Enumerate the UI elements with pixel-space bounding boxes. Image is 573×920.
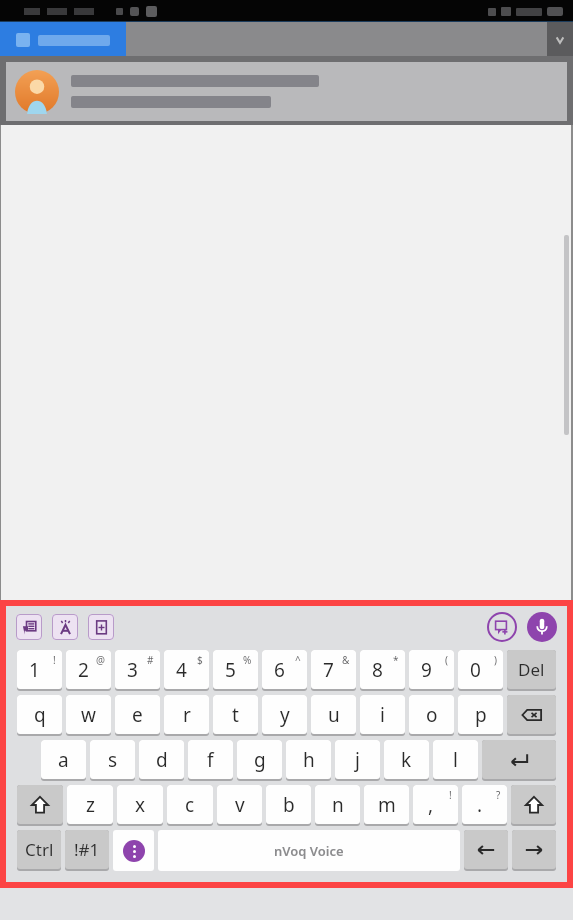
button[interactable]: , — [413, 785, 458, 824]
button[interactable]: j — [335, 740, 380, 779]
staticText: a — [58, 747, 69, 773]
button[interactable]: q — [17, 695, 62, 734]
staticText: n — [332, 792, 344, 818]
button[interactable]: Backspace — [507, 695, 556, 734]
button[interactable]: Patients tab — [0, 22, 126, 58]
button[interactable]: f — [188, 740, 233, 779]
staticText: ? — [496, 788, 501, 802]
button[interactable]: r — [164, 695, 209, 734]
button[interactable]: m — [364, 785, 409, 824]
staticText: w — [81, 702, 96, 728]
staticText: t — [232, 702, 239, 728]
button[interactable]: Move right — [512, 830, 556, 869]
button[interactable]: k — [384, 740, 429, 779]
button[interactable]: o — [409, 695, 454, 734]
staticText: e — [132, 702, 143, 728]
staticText: c — [185, 792, 195, 818]
staticText: !#1 — [74, 838, 100, 861]
staticText: @ — [96, 653, 105, 667]
staticText: Del — [518, 658, 545, 681]
staticText: g — [254, 747, 266, 773]
button[interactable]: x — [117, 785, 163, 824]
button[interactable]: Del — [507, 650, 556, 689]
button[interactable]: n — [315, 785, 360, 824]
button[interactable]: d — [139, 740, 184, 779]
staticText: r — [183, 702, 191, 728]
staticText: Ctrl — [25, 838, 54, 861]
staticText: h — [303, 747, 315, 773]
button[interactable]: u — [311, 695, 356, 734]
button[interactable]: c — [167, 785, 213, 824]
button[interactable]: !#1 — [65, 830, 109, 869]
button[interactable]: l — [433, 740, 478, 779]
button[interactable]: v — [217, 785, 262, 824]
button[interactable]: Insert snippet — [88, 614, 114, 640]
button[interactable]: 9 — [409, 650, 454, 689]
button[interactable]: y — [262, 695, 307, 734]
staticText: 7 — [323, 657, 334, 683]
button[interactable]: b — [266, 785, 311, 824]
button[interactable]: Insert template — [16, 614, 42, 640]
button[interactable]: t — [213, 695, 258, 734]
staticText: q — [34, 702, 46, 728]
button[interactable] — [6, 62, 567, 121]
staticText: l — [453, 747, 458, 773]
button[interactable]: 7 — [311, 650, 356, 689]
staticText: y — [280, 702, 290, 728]
staticText: 3 — [127, 657, 138, 683]
staticText: o — [426, 702, 438, 728]
staticText: 0 — [470, 657, 481, 683]
button[interactable]: 1 — [17, 650, 62, 689]
button[interactable]: Ctrl — [17, 830, 61, 869]
button[interactable]: Microphone — [527, 612, 557, 642]
button[interactable]: 0 — [458, 650, 503, 689]
staticText: % — [243, 653, 252, 667]
staticText: m — [378, 792, 396, 818]
button[interactable]: 5 — [213, 650, 258, 689]
button[interactable]: More tabs — [547, 22, 573, 58]
button[interactable]: w — [66, 695, 111, 734]
staticText: ) — [494, 653, 497, 667]
staticText: . — [477, 792, 483, 818]
button[interactable]: 6 — [262, 650, 307, 689]
staticText: & — [342, 653, 350, 667]
button[interactable]: g — [237, 740, 282, 779]
button[interactable]: 3 — [115, 650, 160, 689]
button[interactable]: e — [115, 695, 160, 734]
button[interactable]: Move left — [464, 830, 508, 869]
button[interactable]: 4 — [164, 650, 209, 689]
staticText: s — [108, 747, 118, 773]
button[interactable]: Auto text — [52, 614, 78, 640]
staticText: f — [207, 747, 214, 773]
button[interactable]: a — [41, 740, 86, 779]
staticText: d — [156, 747, 168, 773]
staticText: ( — [445, 653, 448, 667]
button[interactable]: s — [90, 740, 135, 779]
staticText: 5 — [225, 657, 236, 683]
staticText: 9 — [421, 657, 432, 683]
button[interactable]: 2 — [66, 650, 111, 689]
staticText: $ — [197, 653, 203, 667]
button[interactable]: p — [458, 695, 503, 734]
staticText: v — [235, 792, 245, 818]
staticText: # — [147, 653, 154, 667]
staticText: ! — [449, 788, 452, 802]
button[interactable]: Shift — [511, 785, 556, 824]
button[interactable]: Dictation feedback — [487, 612, 517, 642]
staticText: 4 — [176, 657, 187, 683]
button[interactable]: nVoq Voice — [158, 830, 460, 871]
button[interactable]: Enter — [482, 740, 556, 779]
staticText: b — [283, 792, 295, 818]
staticText: j — [355, 747, 360, 773]
button[interactable]: . — [462, 785, 507, 824]
button[interactable]: i — [360, 695, 405, 734]
staticText: p — [475, 702, 487, 728]
button[interactable]: More options — [113, 830, 154, 871]
button[interactable]: z — [67, 785, 113, 824]
button[interactable]: 8 — [360, 650, 405, 689]
button[interactable]: Shift — [17, 785, 63, 824]
staticText: u — [328, 702, 340, 728]
staticText: i — [380, 702, 385, 728]
button[interactable]: h — [286, 740, 331, 779]
staticText: ! — [53, 653, 56, 667]
